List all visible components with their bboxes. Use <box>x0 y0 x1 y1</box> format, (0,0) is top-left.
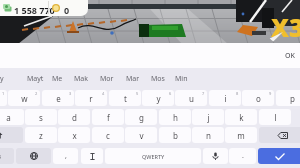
staticText: n <box>206 130 211 141</box>
staticText: QWERTY <box>142 153 165 160</box>
staticText: 3 <box>69 91 72 96</box>
button[interactable]: Voice input <box>203 148 228 164</box>
staticText: o <box>256 93 261 104</box>
staticText: X3 <box>271 10 300 44</box>
staticText: Mayt <box>27 74 44 84</box>
staticText: d <box>72 112 77 123</box>
staticText: a <box>6 112 11 123</box>
staticText: t <box>124 93 127 104</box>
staticText: 5 <box>136 91 139 96</box>
button[interactable]: l <box>259 109 291 125</box>
button[interactable]: Space <box>105 148 201 164</box>
staticText: OK <box>285 51 295 61</box>
button[interactable]: d <box>58 109 90 125</box>
button[interactable]: Mor <box>98 72 116 86</box>
button[interactable]: . <box>229 148 256 164</box>
staticText: 8 <box>236 91 239 96</box>
button[interactable]: Move cursor <box>81 148 103 164</box>
staticText: Mak <box>74 74 89 84</box>
button[interactable]: p <box>276 90 300 106</box>
button[interactable]: r <box>75 90 107 106</box>
staticText: s <box>39 112 43 123</box>
staticText: k <box>239 112 244 123</box>
button[interactable]: f <box>92 109 124 125</box>
button[interactable]: e <box>42 90 74 106</box>
button[interactable]: x <box>58 127 90 143</box>
staticText: Min <box>175 74 188 84</box>
button[interactable]: OK <box>283 50 297 62</box>
staticText: 1 <box>2 91 5 96</box>
staticText: f <box>107 112 110 123</box>
button[interactable]: o <box>242 90 274 106</box>
button[interactable]: b <box>159 127 191 143</box>
staticText: Mos <box>151 74 165 84</box>
staticText: , <box>65 151 67 161</box>
staticText: v <box>139 130 144 141</box>
staticText: u <box>189 93 194 104</box>
button[interactable]: i <box>209 90 241 106</box>
button[interactable]: a <box>0 109 24 125</box>
button[interactable]: g <box>125 109 157 125</box>
staticText: m <box>237 130 245 141</box>
staticText: h <box>173 112 178 123</box>
staticText: c <box>106 130 110 141</box>
button[interactable]: u <box>175 90 207 106</box>
staticText: ?123 <box>0 153 1 160</box>
button[interactable]: s <box>25 109 57 125</box>
button[interactable]: Mos <box>149 72 167 86</box>
button[interactable]: h <box>159 109 191 125</box>
button[interactable]: Backspace <box>259 127 300 143</box>
staticText: 2 <box>35 91 38 96</box>
staticText: Mor <box>100 74 114 84</box>
button[interactable]: Enter <box>258 148 300 164</box>
staticText: 0 <box>64 4 70 16</box>
button[interactable]: m <box>225 127 257 143</box>
staticText: p <box>290 93 295 104</box>
staticText: y <box>0 74 4 84</box>
button[interactable]: Min <box>173 72 190 86</box>
staticText: g <box>139 112 144 123</box>
staticText: 1 558 770 <box>14 4 55 16</box>
button[interactable]: Me <box>50 72 65 86</box>
button[interactable]: Switch language <box>16 148 51 164</box>
staticText: 9 <box>269 91 272 96</box>
staticText: i <box>224 93 227 104</box>
staticText: Me <box>52 74 63 84</box>
button[interactable]: ?123 <box>0 148 14 164</box>
staticText: w <box>21 93 28 104</box>
staticText: j <box>207 112 210 123</box>
staticText: e <box>56 93 61 104</box>
staticText: y <box>156 93 161 104</box>
button[interactable]: , <box>53 148 78 164</box>
staticText: b <box>173 130 178 141</box>
button[interactable]: w <box>8 90 40 106</box>
staticText: 4 <box>102 91 105 96</box>
staticText: . <box>242 151 244 161</box>
button[interactable]: Mar <box>124 72 142 86</box>
button[interactable]: q <box>0 90 7 106</box>
button[interactable]: z <box>25 127 57 143</box>
button[interactable]: v <box>125 127 157 143</box>
staticText: 6 <box>169 91 172 96</box>
staticText: Mar <box>126 74 140 84</box>
button[interactable]: c <box>92 127 124 143</box>
button[interactable]: n <box>192 127 224 143</box>
button[interactable]: Mayt <box>25 72 46 86</box>
button[interactable] <box>0 0 88 16</box>
staticText: 7 <box>202 91 205 96</box>
staticText: r <box>89 93 93 104</box>
button[interactable]: Mak <box>72 72 91 86</box>
button[interactable]: Shift <box>0 127 23 143</box>
button[interactable]: k <box>225 109 257 125</box>
button[interactable]: y <box>0 72 6 86</box>
button[interactable]: t <box>109 90 141 106</box>
staticText: z <box>39 130 43 141</box>
button[interactable]: y <box>142 90 174 106</box>
button[interactable]: j <box>192 109 224 125</box>
staticText: x <box>72 130 77 141</box>
staticText: l <box>274 112 277 123</box>
